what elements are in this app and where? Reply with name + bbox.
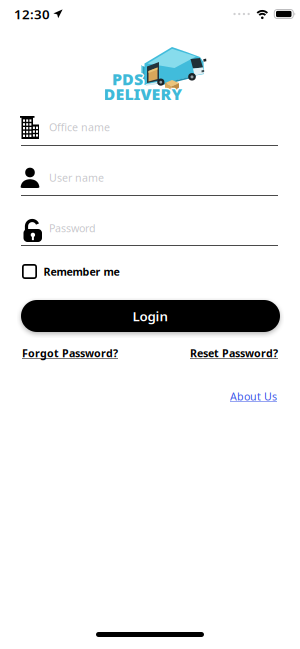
staticText: Office name [49,120,110,134]
staticText: PDS [111,68,142,90]
staticText: User name [49,170,104,185]
staticText: About Us [230,389,277,403]
button[interactable]: Login [0,300,300,332]
button[interactable]: About Us [230,389,277,403]
staticText: Forgot Password? [22,346,118,360]
staticText: DELIVERY [105,83,184,105]
staticText: PDS [113,67,144,89]
button[interactable]: Reset Password? [190,346,278,360]
staticText: DELIVERY [103,83,182,105]
staticText: Remember me [43,264,119,279]
button[interactable]: User name [0,146,300,196]
staticText: PDS [112,67,143,88]
staticText: 12:30 [14,5,50,23]
staticText: PDS [111,69,142,91]
button[interactable]: Remember me [0,246,300,279]
button[interactable]: Office name [0,96,300,146]
staticText: PDS [113,68,144,90]
staticText: PDS [112,68,143,90]
staticText: Reset Password? [190,346,278,360]
staticText: PDS [112,70,143,91]
staticText: DELIVERY [102,84,181,106]
staticText: DELIVERY [103,85,182,106]
staticText: DELIVERY [103,82,182,103]
staticText: DELIVERY [102,83,181,105]
staticText: Login [132,307,168,325]
button[interactable]: Password [0,196,300,246]
button[interactable]: Forgot Password? [22,346,118,360]
staticText: DELIVERY [104,82,183,104]
staticText: DELIVERY [102,82,181,104]
staticText: DELIVERY [104,84,183,106]
staticText: PDS [111,67,142,89]
staticText: PDS [113,69,144,91]
staticText: Password [49,221,96,235]
